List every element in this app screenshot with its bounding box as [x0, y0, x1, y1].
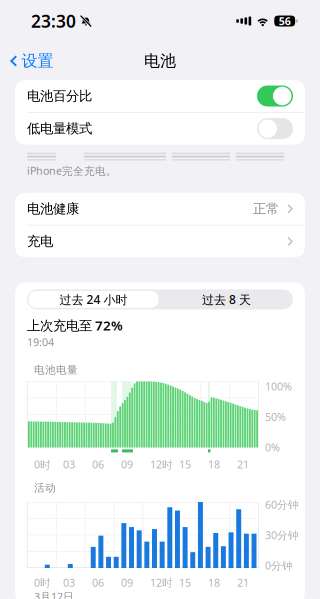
staticText: 06: [92, 457, 104, 471]
staticText: 50%: [265, 410, 286, 424]
staticText: 0分钟: [265, 558, 293, 572]
staticText: 15: [179, 575, 191, 590]
staticText: iPhone完全充电。: [27, 164, 117, 178]
staticText: 设置: [21, 51, 53, 71]
staticText: 过去 8 天: [202, 291, 251, 307]
staticText: 18: [208, 457, 220, 471]
staticText: 19:04: [27, 335, 54, 349]
staticText: 09: [121, 575, 133, 590]
staticText: 100%: [265, 379, 292, 394]
staticText: 15: [179, 457, 191, 471]
staticText: 过去 24 小时: [59, 291, 127, 307]
staticText: 23:30: [31, 9, 76, 32]
staticText: 低电量模式: [27, 120, 92, 137]
staticText: 12时: [150, 457, 173, 471]
button[interactable]: 充电: [15, 225, 305, 257]
staticText: 03: [63, 457, 75, 471]
staticText: 0%: [265, 440, 280, 454]
staticText: 21: [237, 457, 249, 471]
staticText: 3月12日: [34, 589, 74, 599]
staticText: 12时: [150, 575, 173, 590]
staticText: 09: [121, 457, 133, 471]
staticText: 0时: [34, 457, 51, 471]
staticText: 电池: [144, 51, 176, 71]
staticText: 21: [237, 575, 249, 590]
staticText: 30分钟: [265, 528, 299, 542]
button[interactable]: 过去 24 小时: [27, 289, 160, 309]
staticText: 充电: [27, 233, 53, 250]
staticText: 正常: [253, 201, 279, 217]
button[interactable]: 低电量模式: [15, 113, 305, 145]
staticText: 上次充电至 72%: [27, 316, 123, 334]
staticText: 0时: [34, 575, 51, 590]
staticText: 电池健康: [27, 201, 79, 217]
staticText: 电池百分比: [27, 88, 92, 104]
staticText: 60分钟: [265, 497, 299, 512]
staticText: 电池电量: [34, 363, 78, 376]
button[interactable]: 电池健康: [15, 193, 305, 225]
button[interactable]: 过去 8 天: [160, 289, 293, 309]
staticText: 56: [279, 14, 291, 28]
staticText: 03: [63, 575, 75, 590]
staticText: 活动: [34, 481, 56, 494]
button[interactable]: 设置: [0, 46, 63, 76]
staticText: 18: [208, 575, 220, 590]
staticText: 06: [92, 575, 104, 590]
button[interactable]: 电池百分比: [15, 80, 305, 112]
